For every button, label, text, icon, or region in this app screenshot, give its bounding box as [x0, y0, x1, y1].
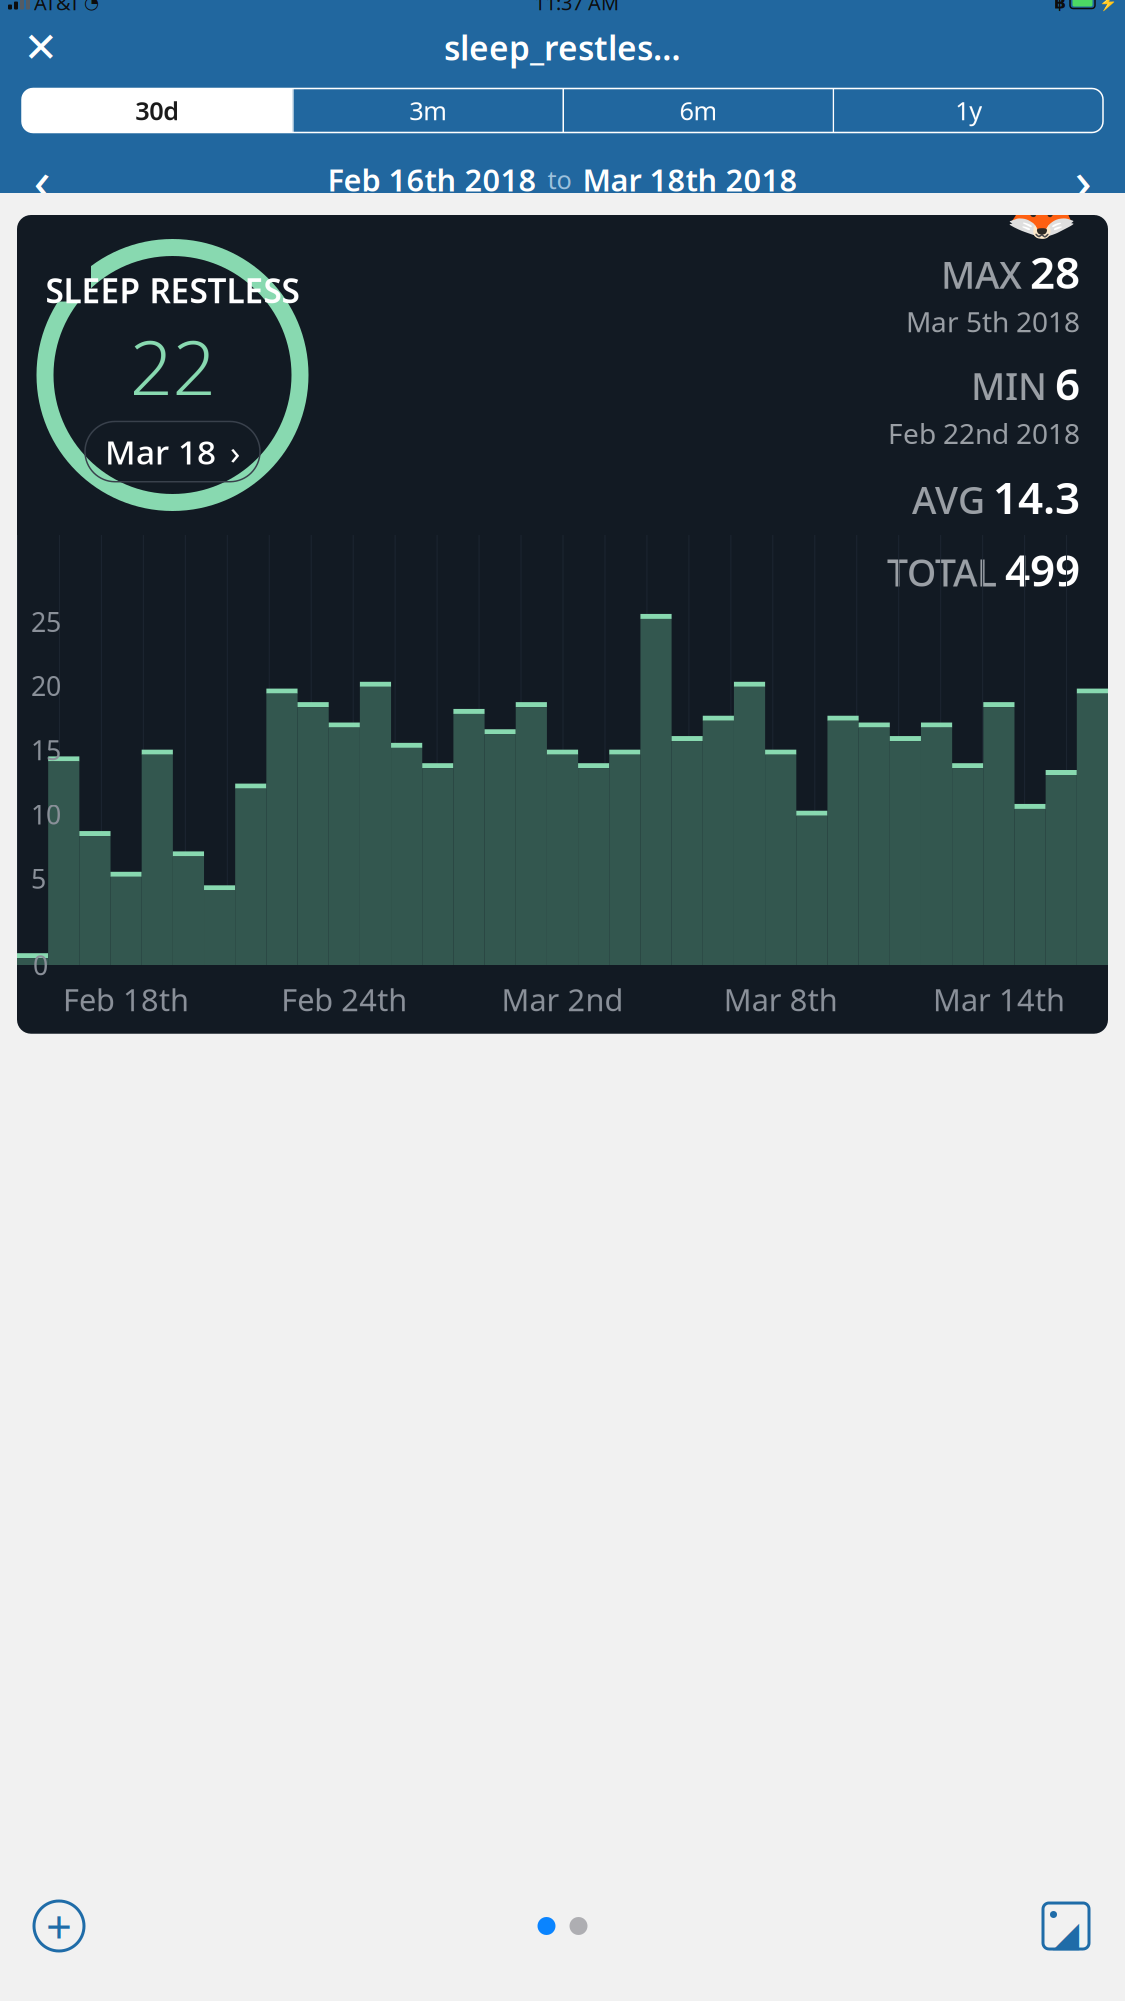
- staticText: 20: [31, 668, 61, 703]
- button[interactable]: 1y: [833, 88, 1103, 132]
- staticText: Mar 14th: [933, 979, 1065, 1020]
- staticText: 1y: [955, 94, 982, 127]
- button[interactable]: 30d: [22, 88, 292, 132]
- staticText: 0: [33, 947, 48, 983]
- staticText: ✕: [23, 24, 58, 71]
- staticText: ›: [1074, 142, 1091, 217]
- staticText: to: [547, 163, 571, 196]
- staticText: Feb 16th 2018: [327, 159, 536, 200]
- staticText: TOTAL: [887, 547, 997, 597]
- staticText: AVG: [912, 475, 985, 524]
- staticText: Mar 5th 2018: [906, 303, 1080, 340]
- staticText: Feb 18th: [63, 979, 189, 1020]
- staticText: SLEEP RESTLESS: [45, 268, 299, 313]
- staticText: ◢: [1052, 1914, 1079, 1954]
- staticText: +: [46, 1896, 72, 1956]
- staticText: 6: [1055, 354, 1080, 412]
- staticText: 11:37 AM: [534, 0, 619, 16]
- staticText: 28: [1030, 242, 1080, 301]
- staticText: ◔: [84, 0, 99, 12]
- staticText: ⚡: [1099, 0, 1117, 11]
- staticText: 🦊: [1005, 175, 1078, 242]
- button[interactable]: Photos: [1031, 1891, 1101, 1961]
- staticText: Mar 2nd: [501, 979, 623, 1020]
- staticText: MAX: [941, 249, 1022, 299]
- staticText: ›: [230, 429, 240, 474]
- staticText: 22: [129, 315, 215, 416]
- button[interactable]: Next date range: [1051, 153, 1115, 205]
- button[interactable]: Add: [24, 1891, 94, 1961]
- staticText: 14.3: [993, 468, 1080, 526]
- button[interactable]: Close: [12, 19, 70, 75]
- staticText: 30d: [135, 94, 179, 127]
- staticText: 15: [31, 732, 61, 768]
- staticText: MIN: [971, 361, 1047, 411]
- staticText: Mar 18th 2018: [582, 159, 797, 200]
- staticText: 5: [31, 861, 46, 896]
- button[interactable]: Mar 18: [85, 421, 260, 482]
- staticText: ‹: [33, 142, 50, 217]
- staticText: 499: [1005, 540, 1080, 598]
- staticText: 6m: [679, 94, 717, 127]
- staticText: 10: [31, 796, 61, 832]
- staticText: Feb 24th: [281, 979, 407, 1020]
- staticText: AT&T: [34, 0, 80, 16]
- button[interactable]: 3m: [292, 88, 562, 132]
- staticText: Mar 18: [105, 429, 216, 474]
- staticText: sleep_restles…: [444, 25, 681, 70]
- staticText: 25: [31, 604, 61, 639]
- button[interactable]: 6m: [562, 88, 833, 132]
- staticText: Feb 22nd 2018: [888, 414, 1080, 452]
- staticText: ฿: [1054, 0, 1066, 12]
- staticText: 3m: [409, 94, 447, 127]
- staticText: Mar 8th: [724, 979, 838, 1020]
- button[interactable]: Previous date range: [10, 153, 74, 205]
